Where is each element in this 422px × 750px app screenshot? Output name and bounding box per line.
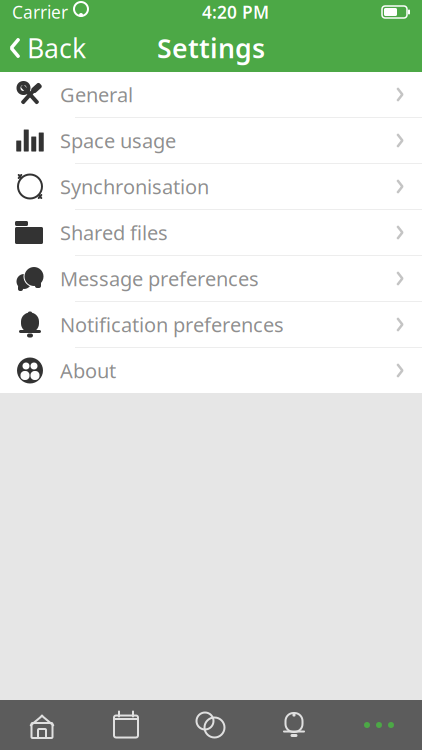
staticText: Shared files	[60, 219, 168, 246]
button[interactable]: Message preferences	[0, 255, 422, 301]
staticText: Synchronisation	[60, 173, 209, 200]
staticText: Settings	[157, 30, 265, 66]
button[interactable]: Notification preferences	[0, 301, 422, 347]
button[interactable]: Messages	[168, 700, 252, 750]
button[interactable]: Back	[0, 24, 86, 72]
staticText: Message preferences	[60, 265, 259, 292]
staticText: Space usage	[60, 127, 176, 154]
button[interactable]: More	[336, 700, 422, 750]
button[interactable]: About	[0, 347, 422, 393]
staticText: Carrier	[12, 0, 68, 23]
button[interactable]: Home	[0, 700, 84, 750]
button[interactable]: Shared files	[0, 209, 422, 255]
button[interactable]: Calendar	[84, 700, 168, 750]
button[interactable]: Notifications	[252, 700, 336, 750]
staticText: 4:20 PM	[202, 0, 269, 23]
staticText: Notification preferences	[60, 311, 284, 338]
staticText: General	[60, 81, 133, 108]
staticText: About	[60, 357, 116, 384]
button[interactable]: General	[0, 72, 422, 117]
button[interactable]: Synchronisation	[0, 163, 422, 209]
staticText: Back	[27, 30, 86, 66]
button[interactable]: Space usage	[0, 117, 422, 163]
